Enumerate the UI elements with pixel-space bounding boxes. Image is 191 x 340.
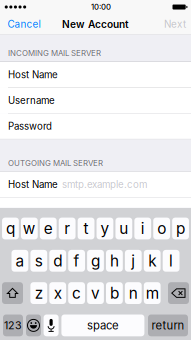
staticText: j <box>131 251 135 270</box>
button[interactable]: a <box>11 250 28 272</box>
staticText: q <box>6 219 15 238</box>
staticText: e <box>44 219 53 238</box>
staticText: k <box>148 251 156 270</box>
button[interactable]: t <box>78 218 94 239</box>
staticText: l <box>169 251 173 270</box>
button[interactable]: p <box>172 218 189 239</box>
button[interactable]: v <box>87 282 104 304</box>
button[interactable]: Dictation <box>44 314 59 336</box>
staticText: smtp.example.com <box>62 179 147 190</box>
staticText: r <box>64 219 70 238</box>
button[interactable]: Password <box>0 114 191 139</box>
staticText: 123 <box>4 319 22 332</box>
staticText: i <box>141 219 145 238</box>
button[interactable]: q <box>2 218 19 239</box>
button[interactable]: d <box>49 250 66 272</box>
button[interactable]: y <box>96 218 113 239</box>
staticText: u <box>119 219 128 238</box>
staticText: Username <box>8 95 55 106</box>
staticText: Host Name <box>8 179 58 190</box>
button[interactable]: z <box>30 282 47 304</box>
button[interactable]: Delete <box>168 282 189 304</box>
button[interactable]: space <box>61 314 144 336</box>
button[interactable]: f <box>68 250 85 272</box>
staticText: Cancel <box>7 18 40 30</box>
button[interactable]: Emoji <box>26 314 41 336</box>
staticText: f <box>74 251 80 270</box>
button[interactable]: Shift <box>2 282 23 304</box>
button[interactable]: l <box>163 250 179 272</box>
staticText: New Account <box>62 18 129 30</box>
button[interactable]: b <box>106 282 123 304</box>
button[interactable]: x <box>49 282 66 304</box>
staticText: Host Name <box>8 69 58 80</box>
staticText: y <box>100 219 109 238</box>
button[interactable]: Host Name <box>0 172 191 198</box>
button[interactable]: o <box>153 218 170 239</box>
staticText: 10:00 <box>91 2 111 12</box>
staticText: m <box>146 284 159 302</box>
button[interactable]: j <box>125 250 142 272</box>
staticText: z <box>35 284 43 302</box>
staticText: x <box>54 284 62 302</box>
staticText: space <box>87 318 119 332</box>
staticText: Password <box>8 120 52 132</box>
staticText: INCOMING MAIL SERVER <box>8 48 101 58</box>
staticText: s <box>35 251 43 270</box>
button[interactable]: Host Name <box>0 62 191 88</box>
staticText: d <box>53 251 62 270</box>
button[interactable]: Username <box>0 88 191 114</box>
staticText: b <box>110 284 119 302</box>
staticText: n <box>129 284 138 302</box>
staticText: t <box>83 219 88 238</box>
staticText: v <box>91 284 100 302</box>
staticText: w <box>23 219 36 238</box>
button[interactable]: r <box>59 218 75 239</box>
staticText: Next <box>164 18 186 30</box>
button[interactable]: h <box>106 250 123 272</box>
staticText: a <box>15 251 24 270</box>
button[interactable]: k <box>144 250 161 272</box>
button[interactable]: n <box>125 282 142 304</box>
button[interactable]: g <box>87 250 104 272</box>
button[interactable]: u <box>115 218 132 239</box>
button[interactable]: m <box>144 282 161 304</box>
button[interactable]: s <box>30 250 47 272</box>
staticText: c <box>72 284 81 302</box>
button[interactable]: e <box>40 218 57 239</box>
button[interactable]: Next <box>164 15 191 33</box>
staticText: return <box>151 318 184 332</box>
button[interactable]: c <box>68 282 85 304</box>
staticText: OUTGOING MAIL SERVER <box>8 158 103 168</box>
button[interactable]: 123 <box>3 314 23 336</box>
button[interactable]: w <box>21 218 38 239</box>
staticText: o <box>157 219 166 238</box>
staticText: p <box>176 219 185 238</box>
button[interactable]: Cancel <box>0 15 41 33</box>
button[interactable]: i <box>134 218 151 239</box>
staticText: h <box>110 251 119 270</box>
staticText: g <box>91 251 100 270</box>
button[interactable]: return <box>148 314 188 336</box>
